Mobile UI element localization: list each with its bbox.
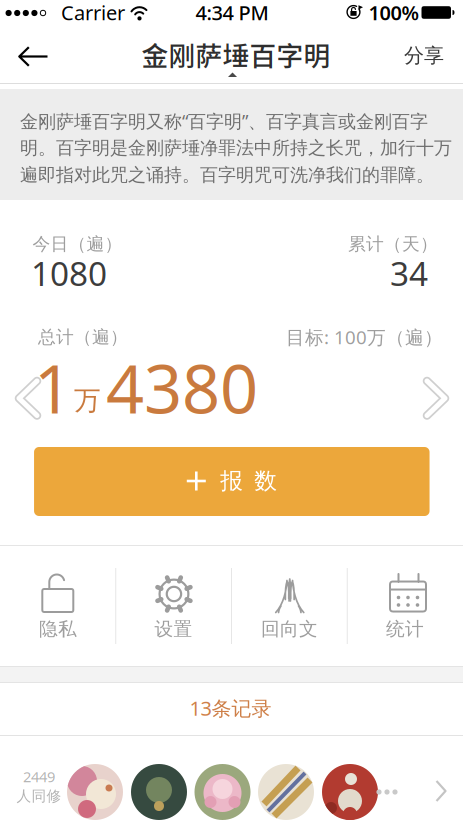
staticText: 累计（天）: [348, 233, 438, 255]
staticText: 遍即指对此咒之诵持。百字明咒可洗净我们的罪障。: [20, 164, 434, 186]
button[interactable]: 隐私: [0, 545, 115, 651]
staticText: 4:34 PM: [195, 0, 268, 26]
staticText: 13条记录: [189, 695, 271, 721]
button[interactable]: 回向文: [232, 545, 347, 651]
staticText: 人同修: [16, 787, 61, 805]
staticText: 4380: [106, 343, 258, 432]
button[interactable]: 分享: [390, 28, 458, 83]
staticText: 今日（遍）: [32, 233, 122, 255]
button[interactable]: 设置: [116, 545, 231, 651]
staticText: 2449: [23, 767, 55, 786]
button[interactable]: 返回: [0, 28, 60, 83]
button[interactable]: 统计: [348, 545, 463, 651]
button[interactable]: 2449 人同修: [0, 736, 463, 829]
staticText: 数: [254, 467, 277, 495]
button[interactable]: 13条记录: [0, 683, 462, 733]
staticText: 分享: [404, 43, 444, 68]
staticText: 设置: [155, 617, 193, 641]
staticText: 1: [34, 343, 72, 432]
staticText: 统计: [386, 617, 424, 641]
staticText: 隐私: [39, 617, 77, 641]
staticText: 金刚萨埵百字明又称“百字明”、百字真言或金刚百字: [20, 109, 428, 133]
button[interactable]: 上一页: [0, 0, 463, 829]
staticText: 34: [390, 251, 428, 295]
button[interactable]: 报: [34, 447, 430, 516]
staticText: 金刚萨埵百字明: [141, 35, 330, 73]
staticText: 100%: [368, 0, 419, 26]
staticText: 万: [74, 384, 101, 417]
staticText: 明。百字明是金刚萨埵净罪法中所持之长咒，加行十万: [20, 137, 452, 159]
button[interactable]: 下一页: [0, 0, 463, 829]
staticText: 1080: [31, 251, 107, 295]
staticText: Carrier: [61, 0, 125, 26]
staticText: 目标: 100万（遍）: [286, 324, 443, 350]
staticText: 回向文: [261, 617, 318, 641]
staticText: 总计（遍）: [38, 326, 128, 348]
staticText: 报: [220, 467, 243, 495]
